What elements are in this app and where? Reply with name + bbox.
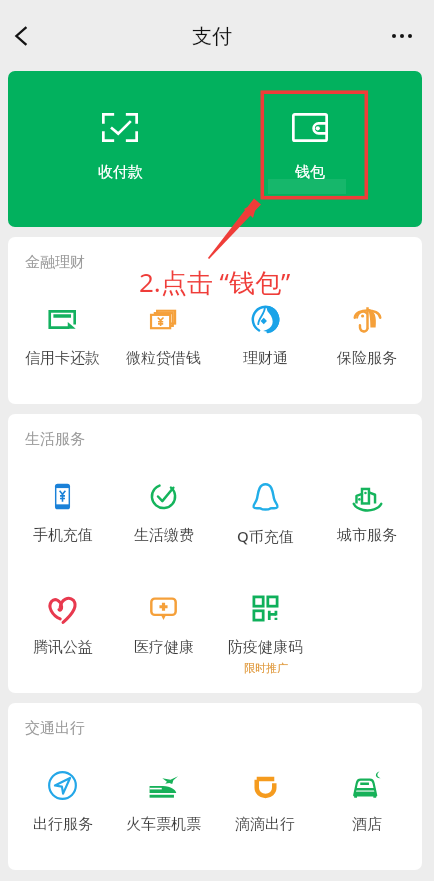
button[interactable]: 理财通: [214, 305, 316, 370]
staticText: 酒店: [352, 815, 382, 834]
staticText: 支付: [192, 24, 232, 49]
staticText: 生活缴费: [134, 526, 194, 545]
button[interactable]: 钱包: [215, 71, 405, 227]
button[interactable]: 收付款: [25, 71, 215, 227]
staticText: 钱包: [295, 163, 325, 182]
staticText: 收付款: [98, 163, 143, 182]
button[interactable]: 腾讯公益: [12, 594, 113, 659]
button[interactable]: 手机充值: [12, 482, 113, 547]
staticText: 生活服务: [25, 430, 85, 449]
staticText: 火车票机票: [126, 815, 201, 834]
staticText: 城市服务: [337, 526, 397, 545]
button[interactable]: 火车票机票: [113, 771, 214, 836]
staticText: 腾讯公益: [33, 638, 93, 657]
button[interactable]: 出行服务: [12, 771, 113, 836]
staticText: Q币充值: [237, 526, 294, 546]
staticText: 限时推广: [244, 661, 288, 675]
button[interactable]: 微粒贷借钱: [113, 305, 214, 370]
button[interactable]: 生活缴费: [113, 482, 214, 547]
staticText: 信用卡还款: [25, 349, 100, 368]
button[interactable]: 保险服务: [316, 305, 418, 370]
staticText: 保险服务: [337, 349, 397, 368]
button[interactable]: 防疫健康码: [214, 594, 316, 659]
staticText: 微粒贷借钱: [126, 349, 201, 368]
staticText: 滴滴出行: [235, 815, 295, 834]
staticText: 医疗健康: [134, 638, 194, 657]
button[interactable]: More options: [382, 16, 422, 56]
staticText: 理财通: [243, 349, 288, 368]
staticText: 2.点击 “钱包”: [139, 264, 291, 300]
staticText: 防疫健康码: [228, 638, 303, 657]
button[interactable]: Back: [2, 16, 42, 56]
staticText: 金融理财: [25, 253, 85, 272]
button[interactable]: 信用卡还款: [12, 305, 113, 370]
button[interactable]: 酒店: [316, 771, 418, 836]
button[interactable]: Q币充值: [214, 482, 316, 547]
button[interactable]: 医疗健康: [113, 594, 214, 659]
staticText: 交通出行: [25, 719, 85, 738]
button[interactable]: 城市服务: [316, 482, 418, 547]
staticText: 手机充值: [33, 526, 93, 545]
button[interactable]: 滴滴出行: [214, 771, 316, 836]
staticText: 出行服务: [33, 815, 93, 834]
